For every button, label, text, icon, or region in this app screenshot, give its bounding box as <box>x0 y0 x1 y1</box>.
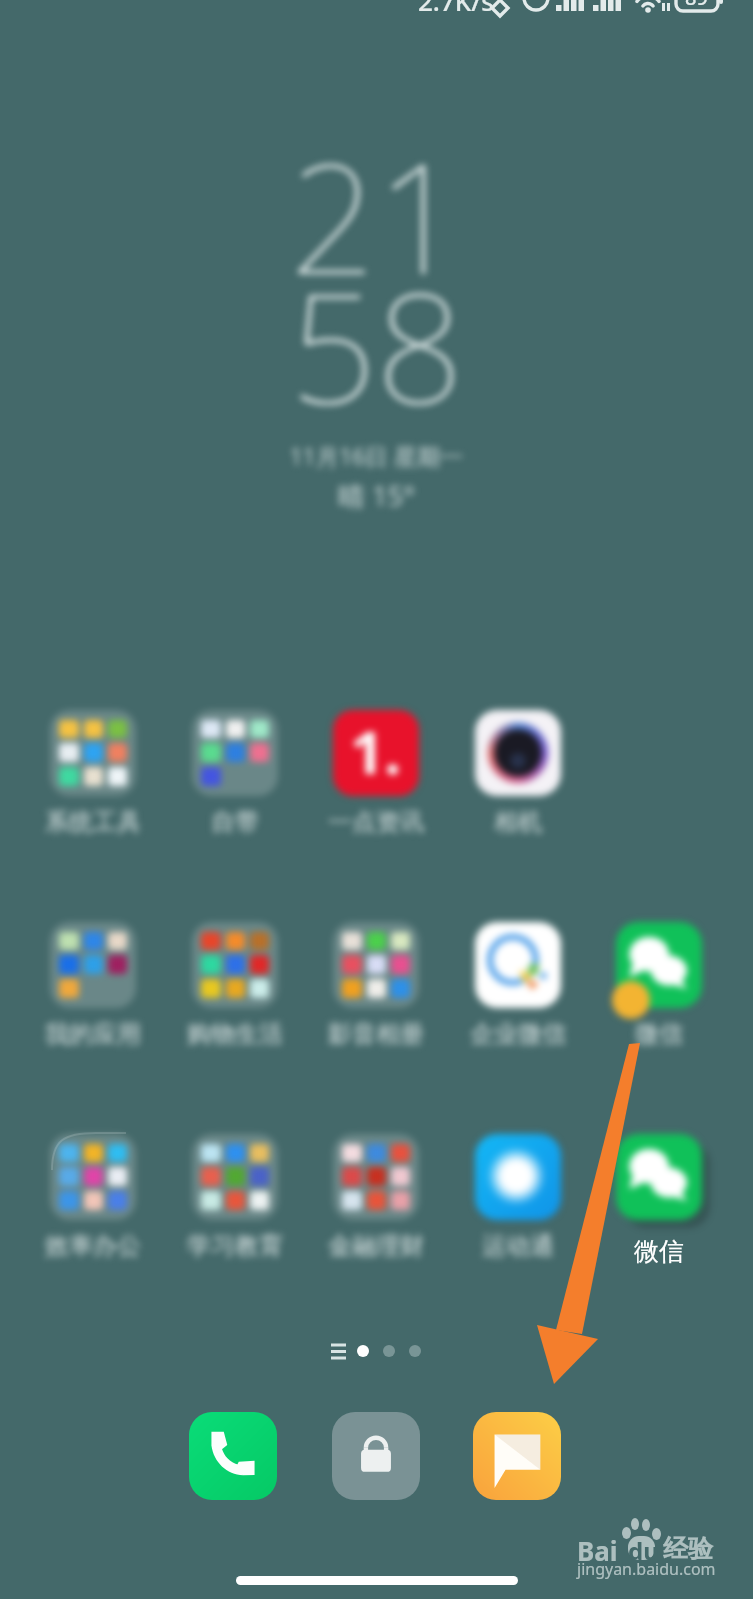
staticText: jingyan.baidu.com <box>577 1558 716 1580</box>
other: Pointer arrow <box>0 0 753 1599</box>
button[interactable]: 运动通 <box>453 1128 583 1266</box>
staticText: 21 <box>0 112 753 319</box>
button[interactable]: 系统工具 <box>28 704 158 842</box>
staticText: 我的应用 <box>45 1019 141 1049</box>
button[interactable]: 影音相册 <box>311 916 441 1054</box>
button[interactable]: Messages <box>473 1412 561 1500</box>
button[interactable]: 自带 <box>170 704 300 842</box>
staticText: 2.7K/s <box>418 0 494 18</box>
staticText: 1. <box>350 710 402 792</box>
button[interactable]: 相机 <box>453 704 583 842</box>
staticText: 金融理财 <box>328 1231 424 1261</box>
staticText: 相机 <box>494 807 542 837</box>
staticText: 58 <box>0 241 753 448</box>
button[interactable]: Phone <box>189 1412 277 1500</box>
staticText: 89 <box>685 0 708 11</box>
button[interactable]: Lock <box>332 1412 420 1500</box>
staticText: du <box>628 1534 659 1567</box>
button[interactable]: 企业微信 <box>453 916 583 1054</box>
staticText: 微信 <box>635 1019 683 1049</box>
button[interactable] <box>594 1128 724 1266</box>
button[interactable]: 1. <box>311 704 441 842</box>
staticText: 运动通 <box>482 1231 554 1261</box>
button[interactable]: 微信 <box>594 916 724 1054</box>
staticText: Bai <box>577 1533 618 1568</box>
staticText: 购物生活 <box>187 1019 283 1049</box>
staticText: 晴 15° <box>0 477 753 514</box>
staticText: 系统工具 <box>45 807 141 837</box>
staticText: 学习教育 <box>187 1231 283 1261</box>
staticText: 一点资讯 <box>328 807 424 837</box>
staticText: 效率办公 <box>45 1231 141 1261</box>
staticText: 11月16日 星期一 <box>0 440 753 471</box>
button[interactable]: 我的应用 <box>28 916 158 1054</box>
button[interactable]: 购物生活 <box>170 916 300 1054</box>
button[interactable]: 效率办公 <box>28 1128 158 1266</box>
staticText: 微信 <box>594 1236 724 1267</box>
button[interactable]: 金融理财 <box>311 1128 441 1266</box>
staticText: 影音相册 <box>328 1019 424 1049</box>
staticText: 经验 <box>663 1533 713 1564</box>
staticText: 企业微信 <box>470 1019 566 1049</box>
button[interactable]: 学习教育 <box>170 1128 300 1266</box>
staticText: 自带 <box>211 807 259 837</box>
